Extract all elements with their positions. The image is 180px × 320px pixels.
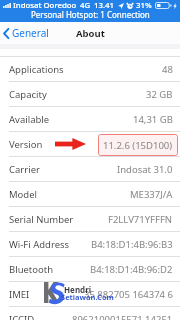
button[interactable]: Version <box>0 132 180 157</box>
button[interactable]: Model <box>0 182 180 207</box>
staticText: 31% <box>136 0 152 11</box>
staticText: General <box>12 26 49 40</box>
staticText: 32 GB <box>146 88 173 101</box>
staticText: Model <box>9 188 38 201</box>
staticText: Serial Number <box>9 213 74 226</box>
staticText: Hendri <box>64 284 92 295</box>
staticText: 48 <box>162 63 173 76</box>
staticText: IMEI <box>9 288 30 301</box>
staticText: F2LLV71YFFFN <box>108 213 173 226</box>
staticText: 35 882705 164374 6 <box>84 288 173 301</box>
staticText: B4:18:D1:4B:96:B3 <box>91 238 173 251</box>
button[interactable]: Capacity <box>0 82 180 107</box>
staticText: 13.41 <box>94 0 114 11</box>
button[interactable]: Serial Number <box>0 207 180 232</box>
staticText: Indosat Ooredoo <box>13 0 77 11</box>
staticText: ICCID <box>9 313 35 320</box>
button[interactable]: Bluetooth <box>0 257 180 282</box>
button[interactable]: Available <box>0 107 180 132</box>
button[interactable]: ICCID <box>0 307 180 320</box>
staticText: Carrier <box>9 163 40 176</box>
staticText: B4:18:D1:4B:96:D2 <box>90 263 173 276</box>
staticText: Personal Hotspot: 1 Connection <box>31 9 150 20</box>
staticText: ME337J/A <box>130 188 173 201</box>
staticText: 14,31 GB <box>133 113 173 126</box>
button[interactable]: General <box>3 22 49 44</box>
staticText: Version <box>9 138 43 151</box>
staticText: Wi-Fi Address <box>9 238 70 251</box>
staticText: Bluetooth <box>9 263 54 276</box>
button[interactable]: Carrier <box>0 157 180 182</box>
staticText: 11.2.6 (15D100) <box>103 139 173 152</box>
staticText: Available <box>9 113 50 126</box>
staticText: Setiawan.Com <box>61 292 114 302</box>
button[interactable]: IMEI <box>0 282 180 307</box>
button[interactable]: Wi-Fi Address <box>0 232 180 257</box>
staticText: Applications <box>9 63 64 76</box>
button[interactable]: Applications <box>0 57 180 82</box>
staticText: 4G <box>80 0 91 11</box>
staticText: 8962100015571 14251 <box>72 313 173 320</box>
staticText: Indosat 31.0 <box>117 163 173 176</box>
staticText: Capacity <box>9 88 47 101</box>
staticText: About <box>76 27 105 40</box>
